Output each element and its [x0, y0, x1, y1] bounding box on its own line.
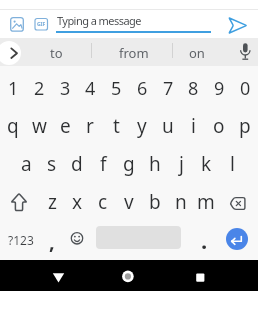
button[interactable]: s: [39, 145, 65, 183]
button[interactable]: i: [180, 107, 206, 145]
staticText: 8: [188, 76, 199, 101]
button[interactable]: j: [168, 145, 194, 183]
button[interactable]: p: [232, 107, 258, 145]
button[interactable]: [113, 263, 142, 289]
button[interactable]: k: [193, 145, 219, 183]
staticText: f: [100, 151, 107, 177]
button[interactable]: 9: [206, 69, 232, 107]
button[interactable]: h: [142, 145, 168, 183]
button[interactable]: z: [39, 183, 65, 221]
button[interactable]: b: [142, 183, 168, 221]
staticText: 2: [34, 76, 45, 101]
button[interactable]: t: [103, 107, 129, 145]
button[interactable]: [64, 226, 90, 252]
button[interactable]: 3: [52, 69, 78, 107]
staticText: to: [50, 44, 63, 62]
staticText: g: [123, 151, 135, 177]
staticText: 1: [8, 76, 19, 101]
staticText: 4: [85, 76, 96, 101]
staticText: v: [124, 189, 134, 215]
button[interactable]: r: [77, 107, 103, 145]
staticText: 9: [214, 76, 225, 101]
staticText: s: [47, 151, 57, 177]
button[interactable]: [186, 263, 215, 289]
staticText: 6: [137, 76, 148, 101]
button[interactable]: n: [168, 183, 194, 221]
button[interactable]: to: [28, 40, 84, 66]
button[interactable]: q: [0, 107, 26, 145]
button[interactable]: [0, 41, 21, 65]
staticText: y: [137, 113, 147, 139]
staticText: k: [201, 151, 212, 177]
button[interactable]: ?123: [2, 221, 40, 259]
button[interactable]: ,: [39, 222, 65, 260]
button[interactable]: [32, 14, 51, 34]
staticText: b: [149, 189, 161, 215]
staticText: d: [71, 151, 83, 177]
staticText: u: [162, 113, 174, 139]
button[interactable]: 8: [180, 69, 206, 107]
button[interactable]: c: [90, 183, 116, 221]
staticText: h: [149, 151, 161, 177]
button[interactable]: a: [13, 145, 39, 183]
button[interactable]: x: [64, 183, 90, 221]
staticText: Typing a message: [57, 13, 141, 28]
button[interactable]: 5: [103, 69, 129, 107]
staticText: ,: [49, 228, 55, 255]
staticText: from: [119, 44, 149, 62]
button[interactable]: 7: [155, 69, 181, 107]
button[interactable]: [44, 263, 73, 289]
staticText: q: [7, 113, 19, 139]
staticText: e: [60, 113, 71, 139]
button[interactable]: 4: [77, 69, 103, 107]
button[interactable]: 0: [232, 69, 258, 107]
button[interactable]: 2: [26, 69, 52, 107]
staticText: x: [72, 189, 83, 215]
staticText: n: [175, 189, 187, 215]
staticText: on: [189, 44, 205, 62]
staticText: m: [197, 189, 215, 215]
staticText: ?123: [8, 232, 34, 248]
button[interactable]: u: [155, 107, 181, 145]
staticText: w: [32, 113, 47, 139]
staticText: GIF: [37, 21, 46, 28]
staticText: c: [98, 189, 108, 215]
button[interactable]: e: [52, 107, 78, 145]
staticText: a: [21, 151, 32, 177]
button[interactable]: 6: [129, 69, 155, 107]
button[interactable]: .: [191, 221, 217, 259]
button[interactable]: on: [173, 40, 221, 66]
button[interactable]: m: [193, 183, 219, 221]
button[interactable]: g: [116, 145, 142, 183]
button[interactable]: o: [206, 107, 232, 145]
button[interactable]: [225, 13, 251, 38]
button[interactable]: [226, 228, 248, 250]
button[interactable]: [236, 41, 256, 63]
staticText: o: [213, 113, 225, 139]
button[interactable]: Typing a message: [54, 10, 212, 34]
button[interactable]: d: [64, 145, 90, 183]
button[interactable]: y: [129, 107, 155, 145]
button[interactable]: f: [90, 145, 116, 183]
staticText: .: [201, 225, 208, 255]
button[interactable]: 1: [0, 69, 26, 107]
staticText: 5: [111, 76, 122, 101]
staticText: t: [113, 113, 120, 139]
staticText: j: [179, 151, 184, 177]
button[interactable]: [220, 183, 258, 221]
button[interactable]: w: [26, 107, 52, 145]
staticText: r: [86, 113, 94, 139]
staticText: z: [48, 189, 57, 215]
staticText: 3: [60, 76, 71, 101]
button[interactable]: from: [99, 40, 169, 66]
staticText: i: [191, 113, 196, 139]
staticText: 7: [163, 76, 174, 101]
button[interactable]: [7, 13, 29, 35]
staticText: l: [230, 151, 235, 177]
button[interactable]: [0, 183, 38, 221]
staticText: 0: [240, 76, 251, 101]
button[interactable]: l: [219, 145, 245, 183]
staticText: p: [239, 113, 251, 139]
button[interactable]: v: [116, 183, 142, 221]
